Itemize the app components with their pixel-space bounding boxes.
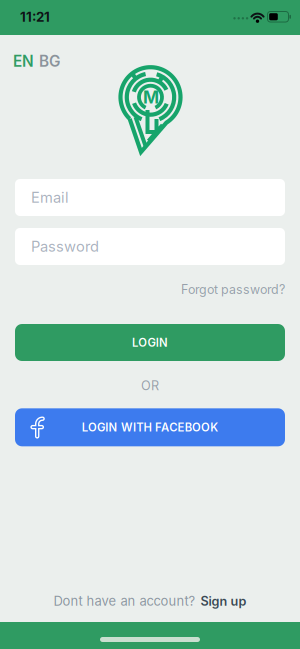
staticText: EN	[13, 52, 34, 71]
staticText: M	[143, 87, 159, 108]
button[interactable]: EN	[13, 52, 34, 71]
staticText: 11:21	[20, 9, 50, 25]
staticText: LOGIN WITH FACEBOOK	[82, 420, 218, 434]
button[interactable]: BG	[39, 52, 60, 71]
button[interactable]: LOGIN	[15, 324, 285, 361]
staticText: LOGIN	[132, 336, 168, 349]
staticText: BG	[39, 52, 60, 71]
staticText: Sign up	[200, 593, 246, 609]
staticText: OR	[141, 378, 159, 393]
button[interactable]: LOGIN WITH FACEBOOK	[15, 408, 285, 446]
button[interactable]: Sign up	[200, 593, 246, 609]
staticText: Password	[31, 238, 99, 255]
staticText: Forgot password?	[181, 282, 285, 297]
staticText: Dont have an account?	[53, 593, 195, 609]
button[interactable]: Forgot password?	[181, 282, 285, 297]
staticText: Email	[31, 189, 69, 206]
